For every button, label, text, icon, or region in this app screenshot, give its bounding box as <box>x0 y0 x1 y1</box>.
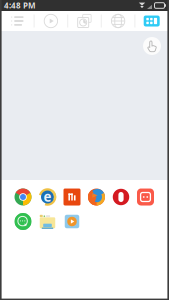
button[interactable]: Opera <box>112 188 130 206</box>
button[interactable]: App <box>136 188 154 206</box>
button[interactable]: Firefox <box>87 188 105 206</box>
button[interactable]: Internet Explorer <box>38 188 56 206</box>
button[interactable]: Pointer <box>143 37 161 55</box>
button[interactable]: Chat <box>14 212 32 230</box>
button[interactable]: Apps <box>135 11 168 31</box>
button[interactable]: List <box>1 11 34 31</box>
button[interactable]: Mi <box>63 188 81 206</box>
button[interactable]: Play <box>35 11 67 31</box>
staticText: e <box>43 188 51 205</box>
staticText: 4:48 PM <box>4 0 36 11</box>
button[interactable]: Explorer <box>38 212 56 230</box>
button[interactable]: Chrome <box>14 188 32 206</box>
button[interactable]: Media Player <box>63 212 81 230</box>
button[interactable]: Web <box>102 11 134 31</box>
button[interactable]: Recent <box>68 11 101 31</box>
